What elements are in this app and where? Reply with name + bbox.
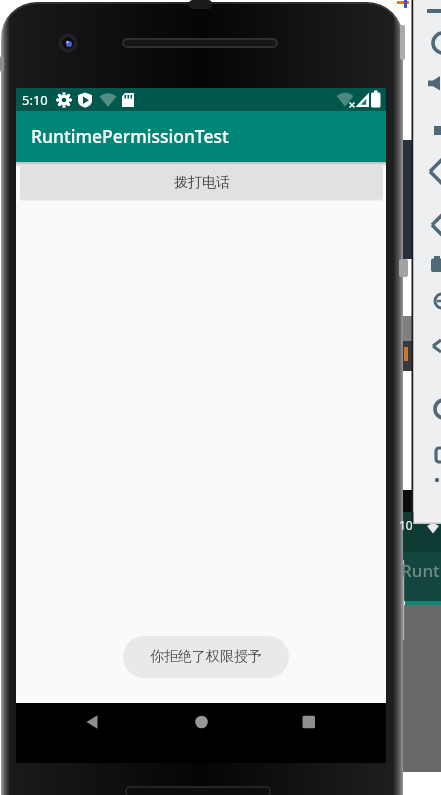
button[interactable] — [424, 391, 441, 411]
button[interactable] — [424, 439, 441, 459]
button[interactable] — [424, 205, 441, 225]
button[interactable] — [78, 708, 108, 736]
button[interactable] — [424, 2, 441, 22]
staticText: 拨打电话 — [174, 174, 230, 192]
staticText: Runt — [401, 559, 440, 582]
button[interactable] — [424, 333, 441, 353]
staticText: RuntimePermissionTest — [31, 124, 229, 148]
staticText: 10 — [399, 517, 413, 533]
button[interactable] — [424, 249, 441, 269]
button[interactable] — [424, 287, 441, 307]
staticText: 你拒绝了权限授予 — [150, 648, 262, 666]
button[interactable]: 拨打电话 — [20, 166, 383, 199]
button[interactable] — [424, 33, 441, 53]
button[interactable] — [424, 117, 441, 137]
button[interactable] — [187, 708, 217, 736]
button[interactable] — [424, 68, 441, 88]
button[interactable] — [424, 152, 441, 172]
staticText: 5:10 — [22, 91, 48, 109]
button[interactable] — [424, 470, 441, 490]
button[interactable] — [294, 708, 324, 736]
